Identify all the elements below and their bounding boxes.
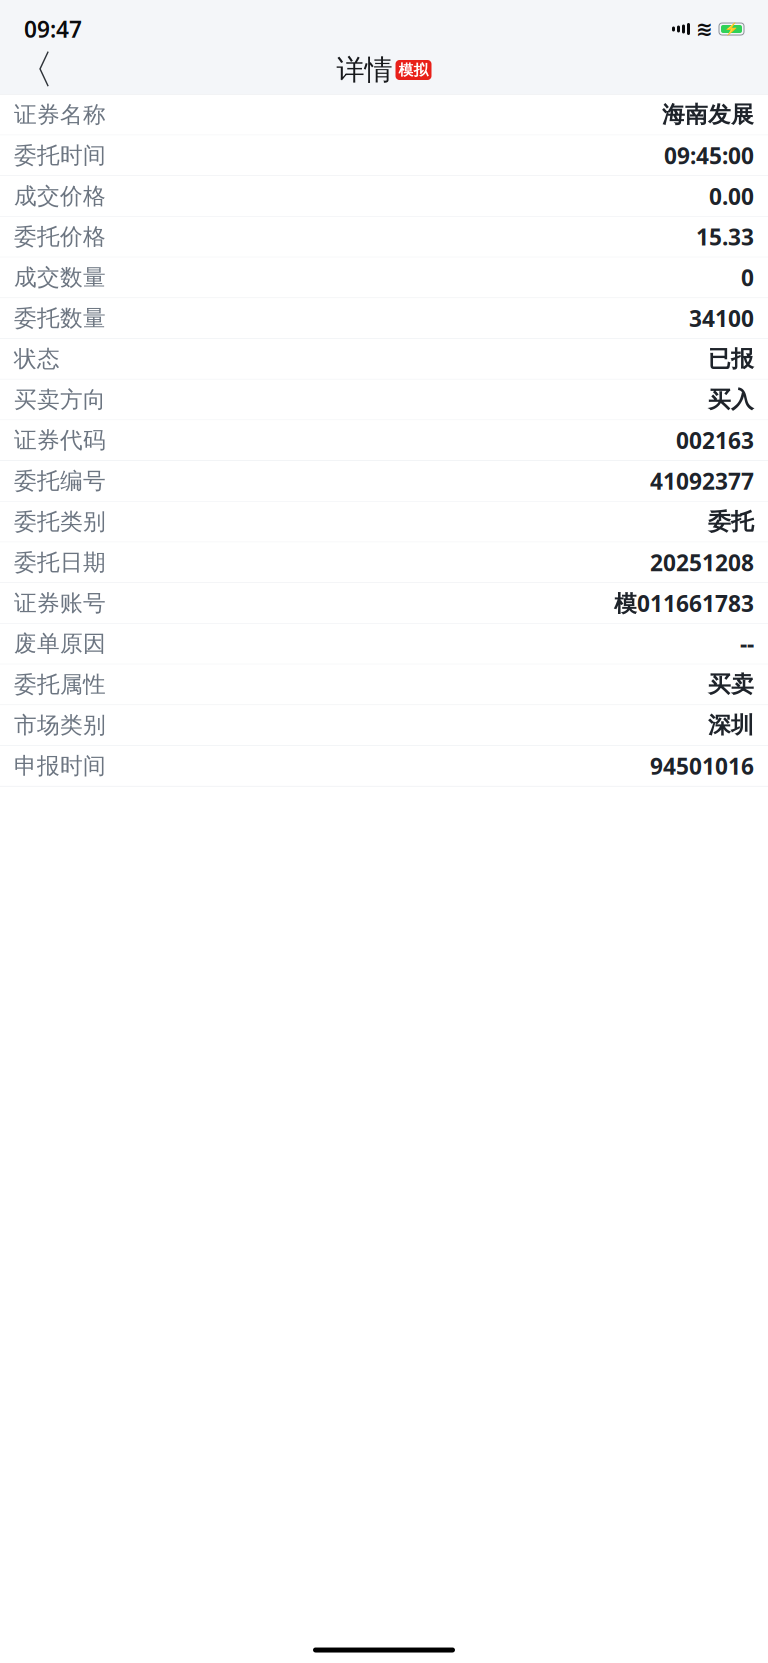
button[interactable]: 委托日期: [0, 542, 768, 583]
button[interactable]: 状态: [0, 339, 768, 380]
staticText: 15.33: [696, 222, 754, 252]
staticText: 证券代码: [14, 426, 106, 454]
staticText: 海南发展: [662, 101, 754, 129]
staticText: 模拟: [398, 61, 428, 79]
staticText: ≋: [696, 18, 713, 40]
staticText: 证券名称: [14, 101, 106, 129]
button[interactable]: 证券名称: [0, 95, 768, 135]
staticText: 94501016: [650, 751, 754, 781]
button[interactable]: 证券账号: [0, 583, 768, 624]
staticText: 委托类别: [14, 508, 106, 536]
button[interactable]: 委托价格: [0, 217, 768, 257]
staticText: 成交价格: [14, 182, 106, 210]
staticText: 已报: [708, 345, 754, 373]
button[interactable]: 成交数量: [0, 257, 768, 298]
button[interactable]: 市场类别: [0, 705, 768, 746]
staticText: 委托编号: [14, 467, 106, 495]
staticText: 委托属性: [14, 671, 106, 698]
staticText: 深圳: [708, 711, 754, 739]
staticText: 买卖方向: [14, 386, 106, 413]
button[interactable]: 委托数量: [0, 298, 768, 339]
staticText: 市场类别: [14, 711, 106, 739]
staticText: 委托: [708, 508, 754, 536]
staticText: 41092377: [650, 466, 754, 496]
staticText: --: [740, 629, 754, 659]
staticText: 申报时间: [14, 752, 106, 780]
staticText: 委托时间: [14, 141, 106, 169]
button[interactable]: 买卖方向: [0, 380, 768, 420]
button[interactable]: 申报时间: [0, 746, 768, 787]
staticText: 模011661783: [614, 588, 754, 618]
staticText: 委托数量: [14, 304, 106, 332]
staticText: 状态: [14, 345, 60, 373]
button[interactable]: 委托类别: [0, 502, 768, 542]
staticText: 09:45:00: [664, 140, 754, 170]
staticText: 09:47: [24, 14, 82, 44]
staticText: 〈: [14, 45, 54, 94]
staticText: 证券账号: [14, 589, 106, 617]
staticText: 0.00: [709, 181, 754, 211]
staticText: 002163: [676, 425, 754, 455]
button[interactable]: 成交价格: [0, 176, 768, 217]
staticText: 详情: [336, 53, 392, 87]
staticText: 买卖: [708, 671, 754, 698]
staticText: 委托日期: [14, 548, 106, 576]
staticText: 成交数量: [14, 264, 106, 291]
staticText: 委托价格: [14, 223, 106, 251]
button[interactable]: 证券代码: [0, 420, 768, 461]
staticText: 20251208: [650, 547, 754, 577]
button[interactable]: 委托编号: [0, 461, 768, 502]
staticText: 废单原因: [14, 630, 106, 658]
staticText: 买入: [708, 386, 754, 413]
button[interactable]: 委托时间: [0, 135, 768, 176]
button[interactable]: 返回: [8, 48, 60, 92]
staticText: 0: [741, 262, 754, 292]
staticText: ⚡: [724, 22, 739, 36]
staticText: 34100: [689, 303, 754, 333]
button[interactable]: 委托属性: [0, 664, 768, 705]
button[interactable]: 废单原因: [0, 624, 768, 664]
